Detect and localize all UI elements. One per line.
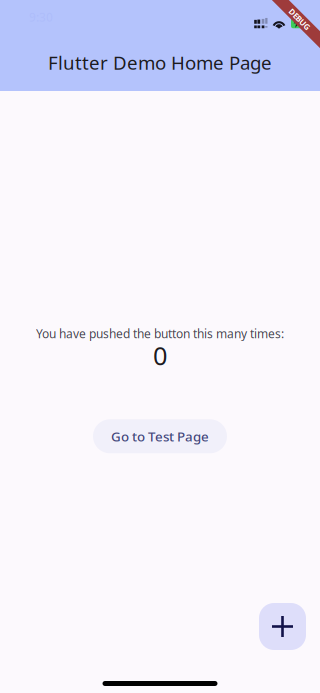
staticText: 0 <box>153 339 167 372</box>
staticText: Go to Test Page <box>111 427 209 445</box>
staticText: Flutter Demo Home Page <box>48 50 272 75</box>
button[interactable]: Go to Test Page <box>93 419 227 453</box>
staticText: You have pushed the button this many tim… <box>36 326 284 342</box>
button[interactable]: Increment <box>259 603 306 650</box>
staticText: DEBUG <box>285 16 312 26</box>
